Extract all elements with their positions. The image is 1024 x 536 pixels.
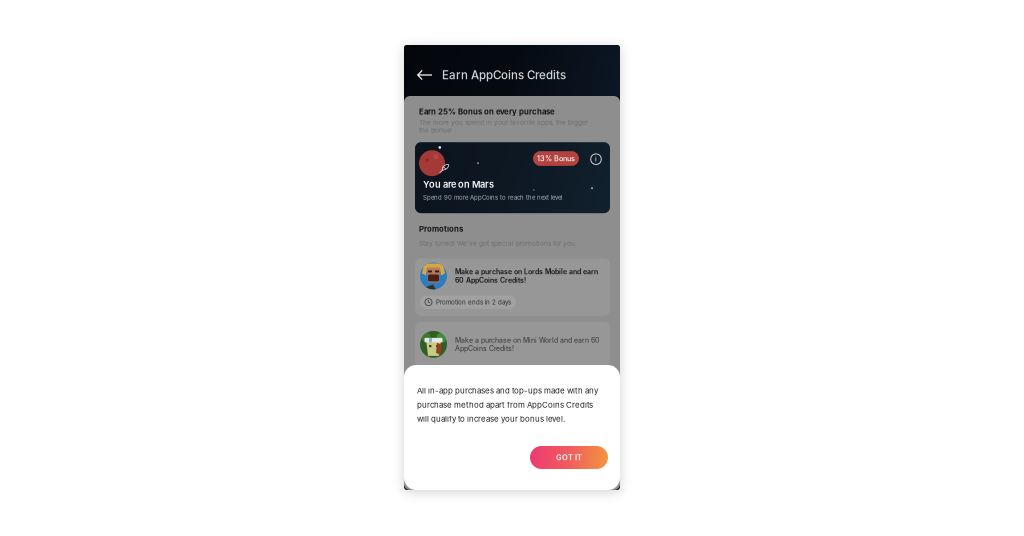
staticText: Stay tuned! We've got special promotions… <box>419 239 577 247</box>
button[interactable]: Make a purchase on Lords Mobile and earn… <box>415 258 610 316</box>
staticText: GOT IT <box>556 453 582 462</box>
button[interactable]: Info <box>579 146 602 165</box>
staticText: Promotion ends in 2 days <box>436 298 511 306</box>
staticText: Promotions <box>419 224 463 234</box>
staticText: The more you spend in your favorite apps… <box>419 118 588 134</box>
staticText: All in-app purchases and top-ups made wi… <box>417 386 598 395</box>
staticText: Make a purchase on Mini World and earn 6… <box>455 336 599 353</box>
staticText: i <box>595 155 597 163</box>
staticText: 13% Bonus <box>537 154 575 163</box>
button[interactable]: Make a purchase on Mini World and earn 6… <box>415 322 610 367</box>
staticText: Earn AppCoins Credits <box>442 68 566 82</box>
staticText: Make a purchase on Lords Mobile and earn… <box>455 267 598 284</box>
button[interactable]: GOT IT <box>530 446 608 469</box>
staticText: You are on Mars <box>423 179 494 190</box>
button[interactable]: Back <box>415 65 435 85</box>
staticText: Earn 25% Bonus on every purchase <box>419 107 555 116</box>
staticText: Spend 90 more AppCoins to reach the next… <box>423 194 562 201</box>
staticText: will qualify to increase your bonus leve… <box>417 414 565 423</box>
staticText: purchase method apart from AppCoins Cred… <box>417 400 593 409</box>
